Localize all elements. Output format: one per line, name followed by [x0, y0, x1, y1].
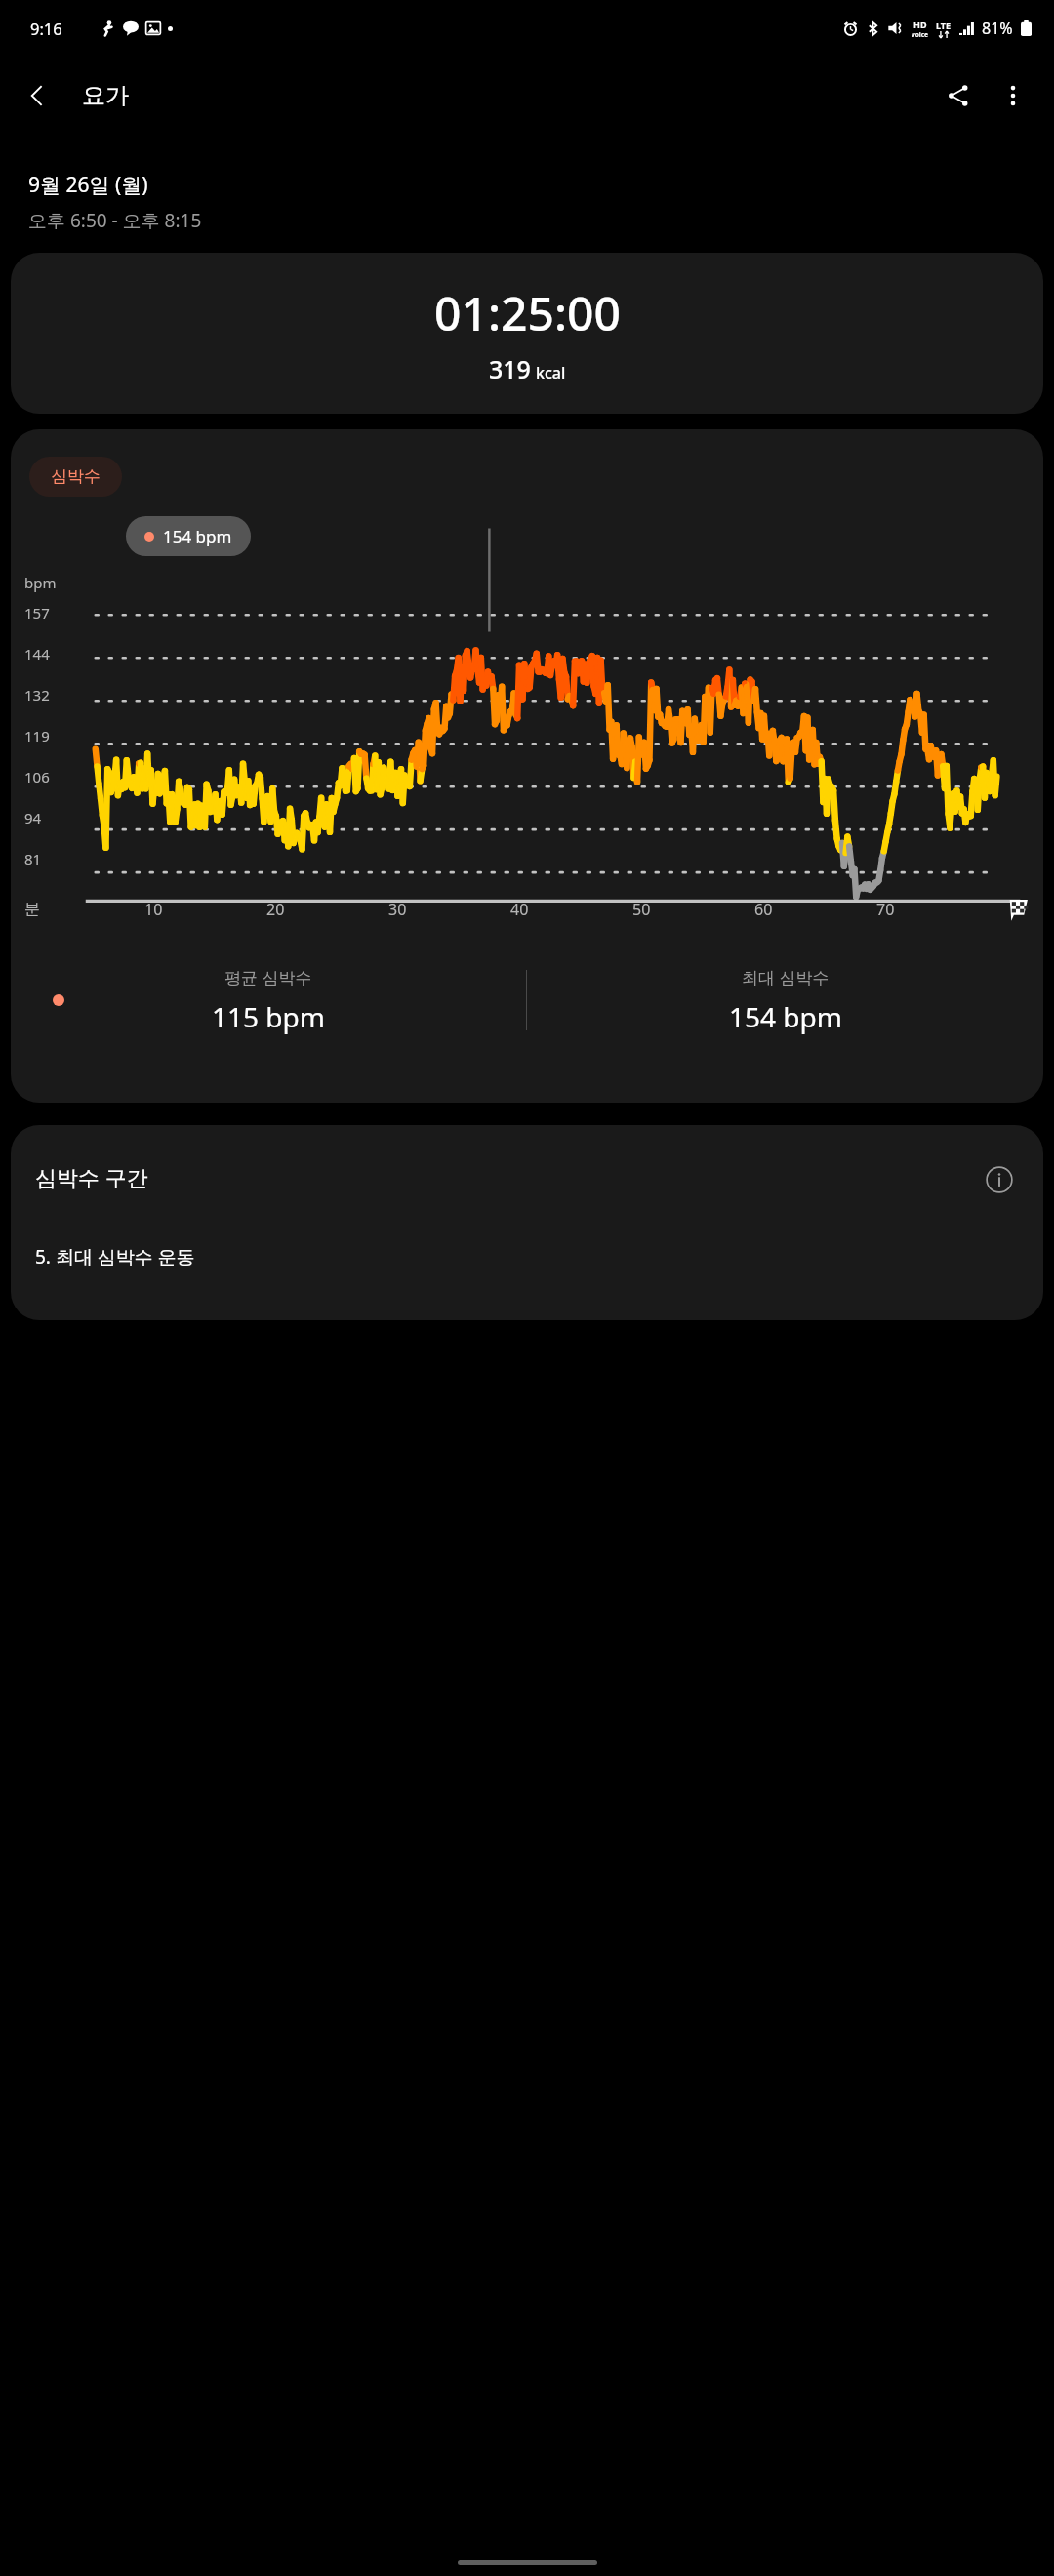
- button[interactable]: 심박수 구간: [11, 1125, 1043, 1320]
- staticText: 157: [24, 603, 50, 623]
- staticText: 9월 26일 (월): [28, 171, 148, 199]
- staticText: 70: [876, 899, 895, 920]
- staticText: 분: [24, 900, 40, 919]
- staticText: bpm: [24, 573, 57, 592]
- staticText: 106: [24, 767, 50, 786]
- staticText: 5. 최대 심박수 운동: [35, 1244, 195, 1269]
- staticText: 20: [266, 899, 285, 920]
- staticText: 319: [489, 352, 531, 385]
- staticText: 오후 6:50 - 오후 8:15: [28, 208, 202, 233]
- staticText: 144: [24, 644, 50, 664]
- staticText: 10: [144, 899, 163, 920]
- staticText: 115 bpm: [212, 998, 325, 1035]
- staticText: kcal: [536, 362, 566, 383]
- staticText: 평균 심박수: [224, 966, 312, 988]
- button[interactable]: More options: [986, 68, 1040, 123]
- staticText: 40: [510, 899, 529, 920]
- button[interactable]: Back: [10, 68, 64, 123]
- staticText: 81: [24, 849, 42, 868]
- staticText: 132: [24, 685, 50, 704]
- staticText: 60: [754, 899, 773, 920]
- staticText: 50: [632, 899, 651, 920]
- staticText: 심박수 구간: [35, 1162, 148, 1191]
- staticText: 154 bpm: [729, 998, 842, 1035]
- staticText: 9:16: [30, 18, 62, 39]
- button[interactable]: Information: [977, 1157, 1022, 1202]
- button[interactable]: Share: [931, 68, 986, 123]
- staticText: 요가: [82, 81, 129, 110]
- staticText: HD: [913, 19, 927, 30]
- staticText: 01:25:00: [434, 281, 621, 344]
- staticText: voice: [912, 30, 928, 39]
- staticText: LTE: [936, 20, 952, 31]
- staticText: 최대 심박수: [742, 966, 830, 988]
- staticText: 심박수: [51, 466, 101, 487]
- button[interactable]: 01:25:00: [11, 253, 1043, 414]
- staticText: 30: [388, 899, 407, 920]
- staticText: 154 bpm: [163, 525, 232, 547]
- button[interactable]: 심박수: [29, 457, 122, 497]
- staticText: 81%: [982, 18, 1013, 39]
- staticText: 119: [24, 726, 50, 745]
- staticText: 94: [24, 808, 42, 827]
